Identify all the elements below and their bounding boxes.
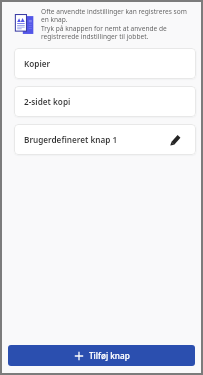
staticText: Brugerdefineret knap 1 (24, 134, 118, 145)
button[interactable]: Kopier (14, 48, 196, 79)
button[interactable]: 2-sidet kopi (14, 86, 196, 117)
button[interactable]: Tilføj knap (8, 345, 195, 366)
staticText: Ofte anvendte indstillinger kan registre… (41, 7, 190, 24)
staticText: Kopier (24, 58, 51, 69)
button[interactable]: Rediger knap (166, 130, 186, 150)
staticText: Tilføj knap (89, 350, 130, 361)
staticText: 2-sidet kopi (24, 96, 71, 107)
staticText: Tryk på knappen for nemt at anvende de r… (41, 24, 190, 41)
button[interactable]: Brugerdefineret knap 1 (14, 124, 196, 155)
